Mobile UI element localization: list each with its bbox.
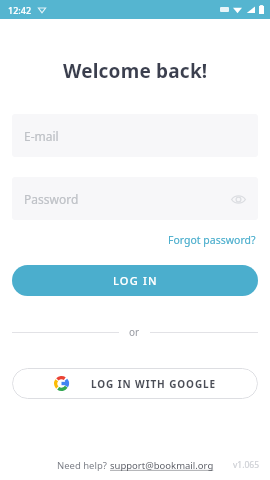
staticText: LOG IN WITH GOOGLE	[91, 377, 217, 391]
button[interactable]: E-mail	[12, 114, 258, 157]
staticText: Forgot password?	[168, 233, 256, 247]
staticText: or	[129, 325, 140, 339]
button[interactable]: Show password	[228, 189, 248, 209]
button[interactable]: support@bookmail.org	[110, 459, 214, 472]
staticText: v1.065	[233, 459, 260, 471]
staticText: support@bookmail.org	[110, 459, 214, 472]
staticText: 12:42	[8, 4, 32, 16]
button[interactable]: Forgot password?	[166, 230, 258, 250]
staticText: E-mail	[24, 128, 59, 144]
button[interactable]: Password	[12, 177, 258, 220]
button[interactable]: LOG IN	[12, 265, 258, 296]
button[interactable]: LOG IN WITH GOOGLE	[12, 368, 258, 399]
staticText: Welcome back!	[63, 58, 208, 84]
staticText: LOG IN	[113, 273, 158, 288]
staticText: Password	[24, 191, 79, 207]
staticText: Need help?	[57, 459, 110, 472]
